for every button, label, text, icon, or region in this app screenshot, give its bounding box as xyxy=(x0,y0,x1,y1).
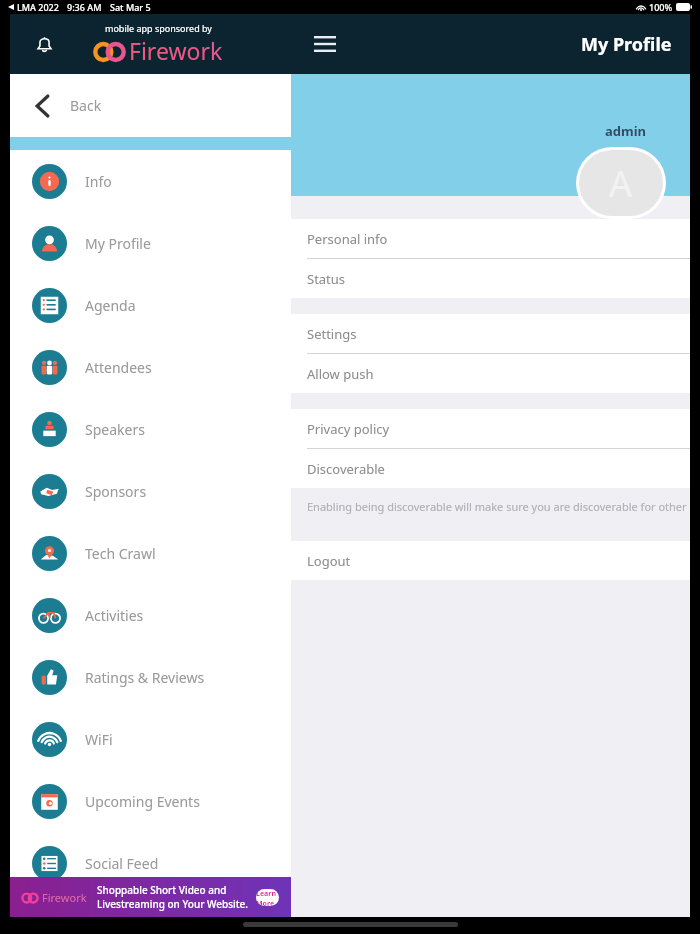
staticText: Personal info xyxy=(307,230,388,248)
button[interactable]: Logout xyxy=(291,541,690,580)
button[interactable]: Status xyxy=(291,259,690,298)
staticText: Speakers xyxy=(85,420,145,439)
button[interactable]: Attendees xyxy=(10,336,291,398)
button[interactable]: Privacy policy xyxy=(291,409,690,448)
button[interactable]: Menu xyxy=(307,26,343,62)
button[interactable]: Speakers xyxy=(10,398,291,460)
staticText: Shoppable Short Video and xyxy=(97,883,227,897)
button[interactable]: WiFi xyxy=(10,708,291,770)
staticText: WiFi xyxy=(85,730,113,749)
button[interactable]: Firework xyxy=(10,877,291,917)
staticText: Enabling being discoverable will make su… xyxy=(307,499,690,514)
button[interactable]: Allow push xyxy=(291,354,690,393)
staticText: Tech Crawl xyxy=(85,544,156,563)
button[interactable]: My Profile xyxy=(10,212,291,274)
staticText: Info xyxy=(85,172,112,191)
staticText: Discoverable xyxy=(307,460,385,478)
staticText: 9:36 AM xyxy=(67,1,102,13)
button[interactable]: Discoverable xyxy=(291,449,690,488)
staticText: Sponsors xyxy=(85,482,147,501)
button[interactable]: Notifications xyxy=(26,26,62,62)
staticText: LMA 2022 xyxy=(17,1,59,13)
button[interactable]: Settings xyxy=(291,314,690,353)
staticText: Activities xyxy=(85,606,144,625)
button[interactable]: Activities xyxy=(10,584,291,646)
button[interactable]: Ratings & Reviews xyxy=(10,646,291,708)
staticText: Agenda xyxy=(85,296,136,315)
staticText: A xyxy=(609,159,633,208)
staticText: Upcoming Events xyxy=(85,792,200,811)
button[interactable]: Social Feed xyxy=(10,832,291,894)
staticText: Sat Mar 5 xyxy=(110,1,151,13)
staticText: Attendees xyxy=(85,358,152,377)
button[interactable]: Back xyxy=(10,74,291,137)
staticText: Social Feed xyxy=(85,854,159,873)
button[interactable]: Agenda xyxy=(10,274,291,336)
staticText: Privacy policy xyxy=(307,420,390,438)
staticText: Status xyxy=(307,270,346,288)
staticText: My Profile xyxy=(85,234,151,253)
staticText: mobile app sponsored by xyxy=(105,22,212,34)
button[interactable]: Tech Crawl xyxy=(10,522,291,584)
staticText: admin xyxy=(605,122,647,140)
staticText: 100% xyxy=(649,1,673,13)
button[interactable]: Upcoming Events xyxy=(10,770,291,832)
staticText: Settings xyxy=(307,325,357,343)
button[interactable]: Learn More xyxy=(256,889,279,906)
staticText: Firework xyxy=(129,35,223,66)
button[interactable]: Info xyxy=(10,150,291,212)
staticText: Logout xyxy=(307,552,351,570)
staticText: Back xyxy=(70,96,102,115)
staticText: Allow push xyxy=(307,365,374,383)
staticText: Learn More xyxy=(256,889,279,906)
staticText: Livestreaming on Your Website. xyxy=(97,897,248,911)
staticText: Firework xyxy=(42,890,87,905)
staticText: My Profile xyxy=(581,32,672,57)
staticText: Ratings & Reviews xyxy=(85,668,205,687)
button[interactable]: Personal info xyxy=(291,219,690,258)
button[interactable]: Sponsors xyxy=(10,460,291,522)
